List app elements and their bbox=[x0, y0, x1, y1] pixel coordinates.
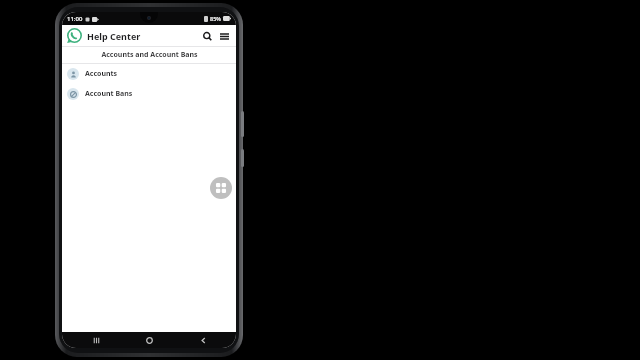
button[interactable]: Recents bbox=[76, 332, 116, 348]
staticText: 85% bbox=[210, 15, 221, 22]
button[interactable]: Account Bans bbox=[62, 84, 236, 104]
button[interactable]: Home bbox=[129, 332, 169, 348]
button[interactable]: App grid bbox=[210, 177, 232, 199]
staticText: Help Center bbox=[87, 30, 141, 42]
staticText: 11:00 bbox=[67, 15, 83, 23]
button[interactable]: Accounts bbox=[62, 64, 236, 84]
button[interactable]: Search bbox=[200, 29, 214, 43]
staticText: Account Bans bbox=[85, 89, 133, 99]
button[interactable]: Menu bbox=[217, 29, 231, 43]
staticText: Accounts and Account Bans bbox=[101, 50, 198, 60]
staticText: Accounts bbox=[85, 69, 118, 79]
button[interactable]: WhatsApp bbox=[67, 28, 82, 43]
button[interactable]: Back bbox=[183, 332, 223, 348]
